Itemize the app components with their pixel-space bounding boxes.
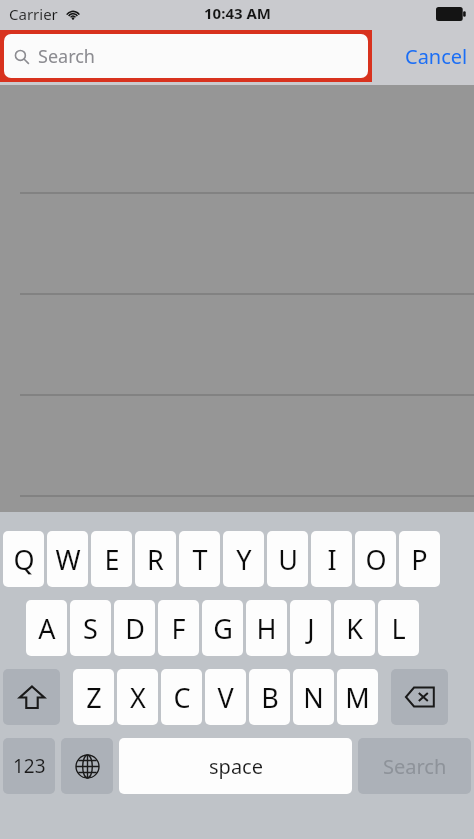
button[interactable]: Search bbox=[358, 738, 471, 794]
button[interactable]: T bbox=[179, 531, 220, 587]
staticText: 10:43 AM bbox=[204, 3, 271, 23]
button[interactable]: V bbox=[205, 669, 246, 725]
button[interactable]: W bbox=[47, 531, 88, 587]
staticText: N bbox=[303, 679, 324, 716]
button[interactable]: F bbox=[158, 600, 199, 656]
staticText: L bbox=[391, 610, 406, 647]
button[interactable]: Shift bbox=[3, 669, 60, 725]
button[interactable]: Y bbox=[223, 531, 264, 587]
button[interactable]: I bbox=[311, 531, 352, 587]
staticText: R bbox=[147, 541, 164, 578]
staticText: X bbox=[130, 679, 146, 716]
button[interactable]: space bbox=[119, 738, 352, 794]
button[interactable]: R bbox=[135, 531, 176, 587]
button[interactable]: N bbox=[293, 669, 334, 725]
button[interactable]: M bbox=[337, 669, 378, 725]
button[interactable]: U bbox=[267, 531, 308, 587]
button[interactable]: Backspace bbox=[391, 669, 448, 725]
staticText: 123 bbox=[13, 753, 46, 779]
staticText: V bbox=[217, 679, 234, 716]
button[interactable]: G bbox=[202, 600, 243, 656]
button[interactable]: S bbox=[70, 600, 111, 656]
button[interactable]: E bbox=[91, 531, 132, 587]
staticText: Carrier bbox=[9, 4, 58, 24]
button[interactable]: Q bbox=[3, 531, 44, 587]
button[interactable]: O bbox=[355, 531, 396, 587]
staticText: B bbox=[261, 679, 279, 716]
button[interactable]: Change keyboard language bbox=[61, 738, 113, 794]
staticText: U bbox=[278, 541, 298, 578]
staticText: H bbox=[256, 610, 277, 647]
staticText: G bbox=[213, 610, 233, 647]
staticText: W bbox=[55, 541, 81, 578]
button[interactable]: P bbox=[399, 531, 440, 587]
button[interactable]: Z bbox=[73, 669, 114, 725]
button[interactable]: A bbox=[26, 600, 67, 656]
button[interactable]: Cancel bbox=[405, 43, 468, 70]
button[interactable]: D bbox=[114, 600, 155, 656]
staticText: O bbox=[365, 541, 387, 578]
staticText: Cancel bbox=[405, 43, 468, 70]
staticText: I bbox=[327, 541, 337, 578]
button[interactable]: Search bbox=[4, 34, 368, 78]
button[interactable]: H bbox=[246, 600, 287, 656]
staticText: Q bbox=[13, 541, 35, 578]
staticText: J bbox=[307, 610, 315, 647]
staticText: Y bbox=[236, 541, 252, 578]
staticText: D bbox=[125, 610, 145, 647]
button[interactable]: L bbox=[378, 600, 419, 656]
button[interactable]: 123 bbox=[3, 738, 55, 794]
staticText: Search bbox=[383, 753, 447, 780]
staticText: C bbox=[173, 679, 191, 716]
staticText: M bbox=[345, 679, 370, 716]
staticText: space bbox=[209, 753, 263, 780]
button[interactable]: J bbox=[290, 600, 331, 656]
button[interactable]: B bbox=[249, 669, 290, 725]
staticText: T bbox=[192, 541, 208, 578]
staticText: P bbox=[411, 541, 428, 578]
staticText: E bbox=[104, 541, 120, 578]
button[interactable]: C bbox=[161, 669, 202, 725]
staticText: A bbox=[38, 610, 56, 647]
staticText: S bbox=[83, 610, 98, 647]
button[interactable]: K bbox=[334, 600, 375, 656]
button[interactable]: X bbox=[117, 669, 158, 725]
staticText: Search bbox=[38, 44, 95, 69]
staticText: K bbox=[346, 610, 363, 647]
staticText: F bbox=[171, 610, 186, 647]
staticText: Z bbox=[86, 679, 102, 716]
